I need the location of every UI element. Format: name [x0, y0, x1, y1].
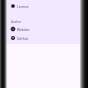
other: License [11, 4, 15, 8]
staticText: Author [11, 20, 21, 24]
button[interactable]: License [0, 1, 88, 10]
other: Website [11, 27, 15, 31]
button[interactable]: GitHub [0, 33, 88, 42]
staticText: License [17, 4, 29, 8]
staticText: Website [17, 27, 30, 31]
other: GitHub [11, 36, 15, 40]
staticText: GitHub [17, 36, 28, 40]
button[interactable]: Website [0, 24, 88, 33]
